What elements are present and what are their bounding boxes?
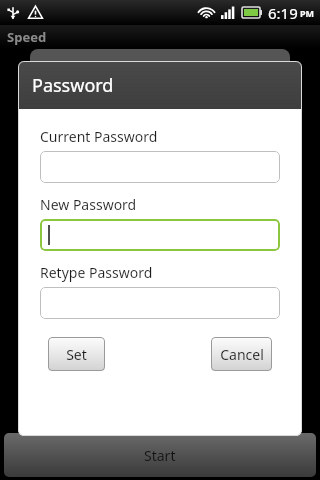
staticText: Set	[66, 345, 87, 364]
staticText: New Password	[40, 195, 137, 214]
staticText: Current Password	[40, 127, 158, 146]
other: Battery	[242, 7, 262, 18]
staticText: Start	[144, 446, 176, 465]
staticText: Retype Password	[40, 263, 153, 282]
staticText: Speed	[7, 28, 47, 46]
other: USB connected	[6, 6, 20, 20]
button[interactable]: Cancel	[211, 337, 272, 371]
other: Warning	[28, 5, 43, 20]
staticText: PM	[300, 7, 315, 19]
other: Wi-Fi signal	[198, 6, 215, 19]
staticText: Cancel	[220, 345, 264, 364]
button[interactable]: Start	[4, 433, 316, 477]
button[interactable]: Set	[48, 337, 105, 371]
staticText: 6:19	[268, 3, 298, 23]
button[interactable]	[40, 151, 280, 183]
button[interactable]	[40, 219, 280, 251]
staticText: Password	[32, 73, 114, 98]
button[interactable]	[40, 287, 280, 319]
other: Cellular signal	[221, 6, 236, 19]
